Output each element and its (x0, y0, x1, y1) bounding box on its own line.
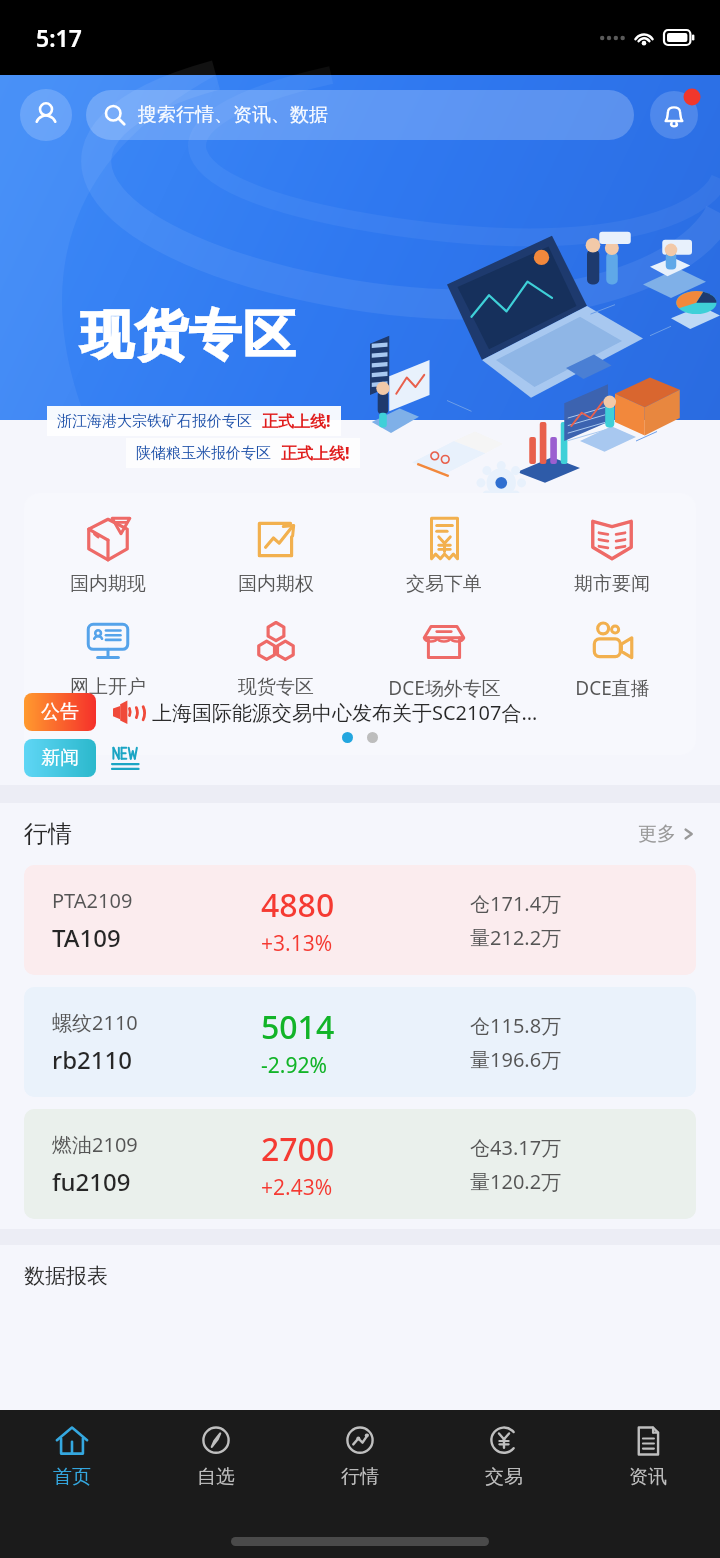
staticText: 国内期现 (70, 572, 146, 596)
staticText: 上海国际能源交易中心发布关于SC2107合… (152, 699, 538, 726)
staticText: 正式上线! (281, 442, 350, 464)
button[interactable]: 国内期权 (192, 511, 360, 598)
button[interactable]: 资讯 (576, 1418, 720, 1491)
staticText: 行情 (341, 1465, 379, 1489)
button[interactable]: Notifications (648, 89, 700, 141)
staticText: DCE直播 (575, 675, 650, 701)
button[interactable]: 行情 (288, 1418, 432, 1491)
staticText: 5014 (261, 1005, 335, 1049)
staticText: 2700 (261, 1127, 335, 1171)
staticText: 燃油2109 (52, 1131, 138, 1158)
button[interactable]: 网上开户 (24, 614, 192, 701)
staticText: 更多 (638, 822, 676, 846)
staticText: 公告 (41, 700, 79, 724)
button[interactable]: Profile (20, 89, 72, 141)
button[interactable]: 自选 (144, 1418, 288, 1491)
staticText: rb2110 (52, 1043, 132, 1076)
staticText: +3.13% (261, 929, 333, 958)
button[interactable]: 新闻 (24, 739, 696, 777)
button[interactable]: 期市要闻 (528, 511, 696, 598)
staticText: 量196.6万 (470, 1046, 562, 1073)
staticText: 正式上线! (262, 410, 331, 432)
staticText: 量120.2万 (470, 1168, 562, 1195)
staticText: 行情 (24, 819, 72, 849)
button[interactable]: 交易 (432, 1418, 576, 1491)
staticText: PTA2109 (52, 887, 133, 914)
staticText: 量212.2万 (470, 924, 562, 951)
staticText: 交易 (485, 1465, 523, 1489)
button[interactable]: 首页 (0, 1418, 144, 1491)
staticText: -2.92% (261, 1051, 327, 1080)
staticText: 交易下单 (406, 572, 482, 596)
staticText: 数据报表 (24, 1263, 108, 1289)
staticText: 网上开户 (70, 675, 146, 699)
staticText: 资讯 (629, 1465, 667, 1489)
staticText: +2.43% (261, 1173, 333, 1202)
staticText: fu2109 (52, 1165, 131, 1198)
staticText: 现货专区 (238, 675, 314, 699)
button[interactable]: DCE场外专区 (360, 614, 528, 703)
staticText: 新闻 (41, 746, 79, 770)
staticText: 仓115.8万 (470, 1012, 562, 1039)
button[interactable]: DCE直播 (528, 614, 696, 703)
staticText: 浙江海港大宗铁矿石报价专区 (57, 412, 252, 431)
staticText: 国内期权 (238, 572, 314, 596)
staticText: 自选 (197, 1465, 235, 1489)
staticText: 5:17 (36, 22, 82, 53)
staticText: 搜索行情、资讯、数据 (138, 103, 328, 127)
button[interactable]: PTA2109 (24, 865, 696, 975)
staticText: 期市要闻 (574, 572, 650, 596)
staticText: 陕储粮玉米报价专区 (136, 444, 271, 463)
button[interactable]: 燃油2109 (24, 1109, 696, 1219)
staticText: 仓171.4万 (470, 890, 562, 917)
button[interactable]: 更多 (638, 822, 696, 846)
button[interactable]: 螺纹2110 (24, 987, 696, 1097)
staticText: DCE场外专区 (388, 675, 501, 701)
staticText: 仓43.17万 (470, 1134, 562, 1161)
button[interactable]: 现货专区 (192, 614, 360, 701)
button[interactable]: 公告 (24, 693, 696, 731)
staticText: 螺纹2110 (52, 1009, 138, 1036)
button[interactable]: 交易下单 (360, 511, 528, 598)
staticText: TA109 (52, 921, 121, 954)
button[interactable]: 搜索行情、资讯、数据 (86, 90, 634, 140)
staticText: 现货专区 (80, 303, 296, 369)
staticText: 首页 (53, 1465, 91, 1489)
button[interactable]: 国内期现 (24, 511, 192, 598)
staticText: 4880 (261, 883, 335, 927)
